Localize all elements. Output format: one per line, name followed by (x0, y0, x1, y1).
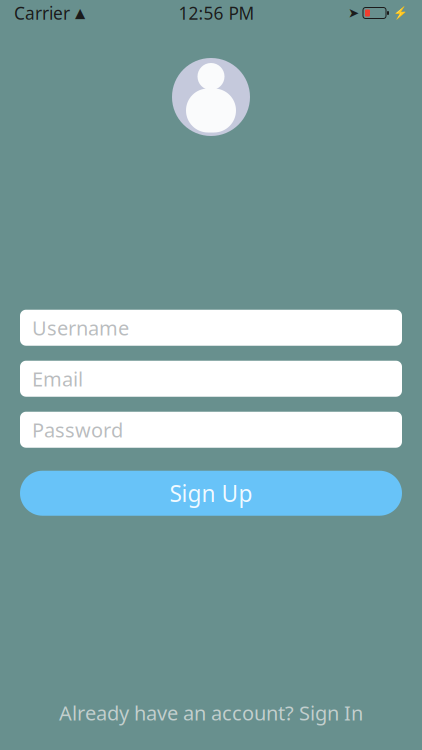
staticText: ⚡ (393, 6, 408, 20)
button[interactable]: Username (20, 310, 402, 346)
staticText: Carrier (14, 1, 70, 24)
staticText: ➤ (348, 5, 359, 20)
staticText: Username (32, 314, 129, 341)
staticText: ▲ (75, 5, 85, 20)
button[interactable]: Password (20, 412, 402, 448)
staticText: Email (32, 365, 83, 392)
button[interactable]: Sign Up (20, 471, 402, 516)
staticText: Password (32, 416, 123, 443)
staticText: Sign Up (169, 478, 252, 508)
staticText: Already have an account? Sign In (59, 699, 363, 726)
button[interactable]: Email (20, 361, 402, 397)
button[interactable]: Already have an account? Sign In (0, 689, 422, 736)
staticText: 12:56 PM (178, 1, 254, 24)
